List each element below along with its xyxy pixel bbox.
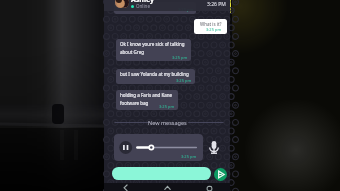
staticText: 3:25 pm bbox=[172, 55, 188, 60]
staticText: Ashley bbox=[131, 0, 155, 5]
staticText: about Greg bbox=[120, 49, 144, 55]
button[interactable]: Back bbox=[104, 183, 146, 191]
staticText: 3:25 pm bbox=[181, 154, 197, 159]
staticText: holding a Faris and Kane bbox=[120, 92, 173, 98]
button[interactable]: Ok I know youre sick of talking bbox=[116, 39, 191, 61]
staticText: 3:26 PM bbox=[207, 1, 226, 8]
button[interactable]: Home bbox=[146, 183, 188, 191]
button[interactable]: 3:25 pm bbox=[114, 134, 203, 161]
staticText: What is it? bbox=[200, 21, 222, 27]
button[interactable]: What is it? bbox=[194, 19, 227, 34]
staticText: 3:25 pm bbox=[159, 104, 175, 109]
button[interactable]: Ashley profile photo bbox=[115, 0, 129, 8]
staticText: but I saw Yolanda at my building bbox=[120, 71, 189, 77]
button[interactable]: Record voice message bbox=[206, 140, 222, 156]
button[interactable]: Recent apps bbox=[188, 183, 230, 191]
button[interactable]: but I saw Yolanda at my building bbox=[116, 69, 195, 84]
staticText: Online bbox=[136, 3, 150, 9]
button[interactable]: holding a Faris and Kane bbox=[116, 90, 178, 110]
staticText: 3:25 pm bbox=[178, 7, 194, 12]
staticText: footware bag bbox=[120, 100, 149, 106]
staticText: 3:25 pm bbox=[176, 78, 192, 83]
button[interactable]: Send bbox=[214, 168, 227, 181]
button[interactable] bbox=[112, 167, 211, 180]
staticText: 3:25 pm bbox=[206, 27, 222, 32]
staticText: New messages bbox=[148, 119, 187, 126]
staticText: Ok I know youre sick of talking bbox=[120, 41, 185, 47]
